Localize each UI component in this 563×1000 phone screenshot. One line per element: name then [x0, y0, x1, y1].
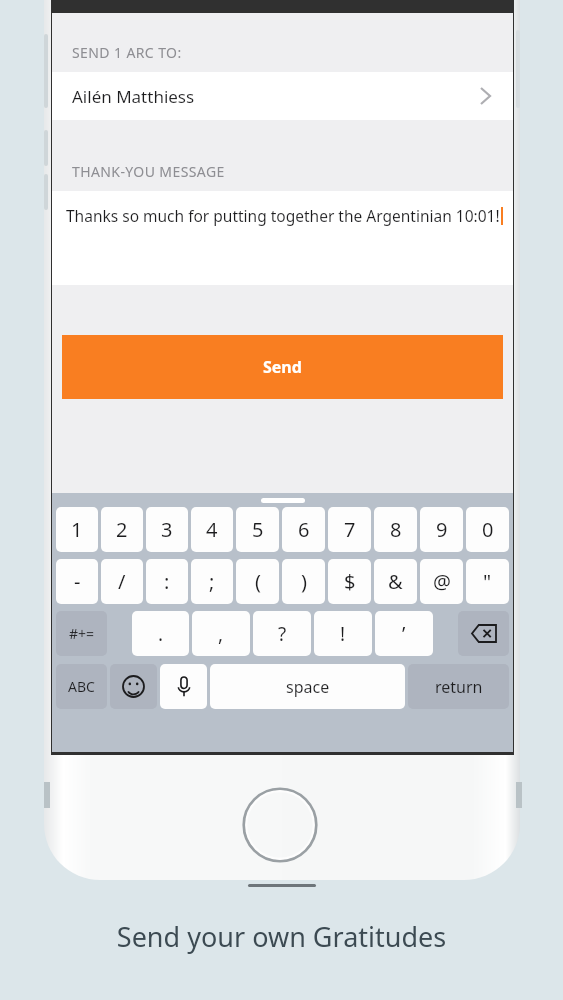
button[interactable]: #+=	[56, 611, 107, 656]
staticText: 2	[116, 516, 128, 543]
staticText: (	[255, 568, 261, 595]
staticText: )	[301, 568, 307, 595]
button[interactable]: 2	[101, 507, 143, 552]
button[interactable]: 3	[146, 507, 188, 552]
button[interactable]: ’	[375, 611, 433, 656]
staticText: 5	[252, 516, 264, 543]
staticText: "	[483, 568, 492, 595]
staticText: Thanks so much for putting together the …	[66, 205, 500, 226]
staticText: .	[158, 621, 164, 647]
staticText: @	[433, 568, 451, 595]
button[interactable]: 7	[328, 507, 371, 552]
staticText: THANK-YOU MESSAGE	[72, 162, 225, 181]
button[interactable]: @	[420, 559, 463, 604]
staticText: 9	[436, 516, 448, 543]
button[interactable]: 6	[282, 507, 325, 552]
staticText: ’	[402, 621, 406, 647]
button[interactable]: :	[146, 559, 188, 604]
staticText: Send your own Gratitudes	[0, 918, 563, 955]
staticText: ,	[218, 621, 224, 647]
button[interactable]: /	[101, 559, 143, 604]
button[interactable]: &	[374, 559, 417, 604]
button[interactable]: Ailén Matthiess	[52, 72, 513, 120]
button[interactable]: 1	[56, 507, 98, 552]
staticText: Ailén Matthiess	[72, 85, 480, 108]
button[interactable]: $	[328, 559, 371, 604]
staticText: SEND 1 ARC TO:	[72, 43, 182, 62]
staticText: /	[118, 568, 126, 595]
button[interactable]: ,	[192, 611, 250, 656]
button[interactable]: Backspace	[458, 611, 509, 656]
button[interactable]: ABC	[56, 664, 107, 709]
button[interactable]: Send	[62, 335, 503, 399]
staticText: ;	[209, 568, 215, 595]
staticText: -	[74, 568, 81, 595]
button[interactable]: 8	[374, 507, 417, 552]
button[interactable]: space	[210, 664, 405, 709]
staticText: 3	[161, 516, 173, 543]
button[interactable]: ?	[253, 611, 311, 656]
staticText: $	[344, 568, 356, 595]
staticText: 6	[298, 516, 310, 543]
staticText: 0	[482, 516, 494, 543]
button[interactable]: )	[282, 559, 325, 604]
button[interactable]: Dictation	[160, 664, 207, 709]
button[interactable]: -	[56, 559, 98, 604]
button[interactable]: "	[466, 559, 509, 604]
button[interactable]: 5	[236, 507, 279, 552]
staticText: ABC	[68, 677, 95, 696]
button[interactable]: .	[132, 611, 189, 656]
button[interactable]: ;	[191, 559, 233, 604]
staticText: 7	[344, 516, 356, 543]
staticText: 1	[71, 516, 83, 543]
staticText: ?	[278, 621, 287, 647]
button[interactable]: 4	[191, 507, 233, 552]
staticText: !	[340, 621, 346, 647]
staticText: #+=	[69, 624, 95, 643]
button[interactable]: !	[314, 611, 372, 656]
staticText: Send	[263, 356, 302, 378]
staticText: &	[388, 568, 403, 595]
staticText: 8	[390, 516, 402, 543]
staticText: return	[435, 676, 483, 698]
staticText: 4	[206, 516, 218, 543]
button[interactable]: 9	[420, 507, 463, 552]
button[interactable]: return	[408, 664, 509, 709]
button[interactable]: (	[236, 559, 279, 604]
staticText: :	[164, 568, 170, 595]
button[interactable]: Emoji	[110, 664, 157, 709]
button[interactable]: 0	[466, 507, 509, 552]
button[interactable]: Thanks so much for putting together the …	[52, 191, 513, 285]
staticText: space	[286, 676, 330, 698]
